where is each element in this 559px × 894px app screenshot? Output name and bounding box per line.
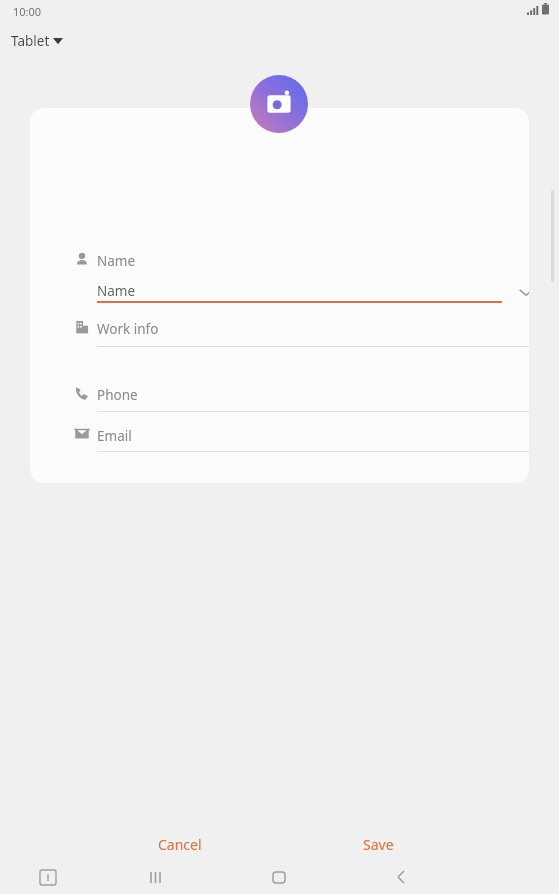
- staticText: 10:00: [13, 4, 42, 19]
- button[interactable]: Back: [390, 866, 414, 890]
- button[interactable]: Home: [267, 866, 291, 890]
- staticText: Name: [97, 282, 136, 300]
- button[interactable]: Cancel: [120, 828, 240, 860]
- staticText: Tablet: [11, 32, 50, 50]
- button[interactable]: Save: [320, 828, 436, 860]
- button[interactable]: Recents: [144, 866, 168, 890]
- button[interactable]: Keyboard: [36, 866, 60, 890]
- button[interactable]: [74, 311, 529, 343]
- staticText: Email: [97, 427, 132, 445]
- staticText: Phone: [97, 386, 138, 404]
- staticText: Save: [363, 835, 394, 854]
- button[interactable]: [74, 418, 529, 450]
- button[interactable]: [90, 274, 520, 308]
- button[interactable]: Expand name: [514, 280, 529, 304]
- button[interactable]: [8, 28, 88, 54]
- staticText: Name: [97, 252, 136, 270]
- staticText: Work info: [97, 320, 159, 338]
- button[interactable]: [74, 377, 529, 409]
- button[interactable]: Add photo: [250, 75, 308, 133]
- staticText: Cancel: [158, 835, 202, 854]
